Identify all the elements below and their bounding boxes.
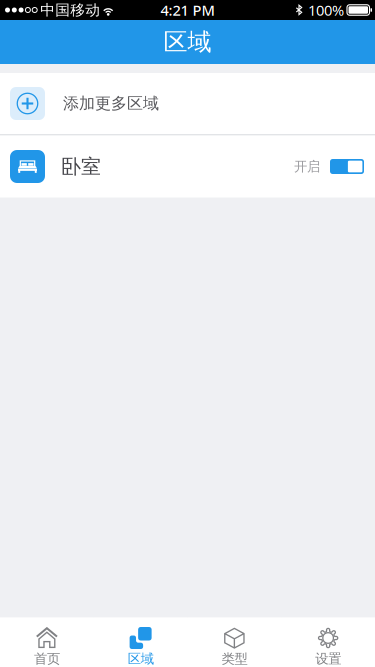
- button[interactable]: 类型: [187, 617, 281, 667]
- staticText: 4:21 PM: [160, 0, 214, 20]
- button[interactable]: 添加更多区域: [0, 73, 375, 134]
- staticText: 添加更多区域: [63, 94, 159, 113]
- staticText: 中国移动: [40, 1, 100, 19]
- button[interactable]: 卧室: [0, 135, 375, 197]
- staticText: 首页: [34, 650, 60, 667]
- staticText: 区域: [128, 650, 154, 667]
- staticText: 100%: [308, 0, 344, 20]
- button[interactable]: 首页: [0, 617, 94, 667]
- staticText: 卧室: [61, 154, 101, 179]
- button[interactable]: 设置: [281, 617, 375, 667]
- staticText: 设置: [315, 650, 341, 667]
- staticText: 类型: [221, 650, 247, 667]
- staticText: 区域: [163, 27, 211, 57]
- button[interactable]: 区域: [94, 617, 188, 667]
- staticText: 开启: [294, 158, 320, 175]
